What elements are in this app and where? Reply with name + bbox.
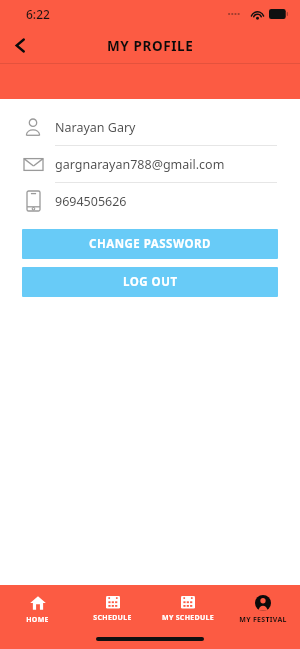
button[interactable]: SCHEDULE	[75, 595, 150, 649]
button[interactable]: gargnarayan788@gmail.com	[0, 146, 300, 183]
button[interactable]: Narayan Gary	[0, 109, 300, 146]
button[interactable]: MY FESTIVAL	[225, 595, 300, 649]
staticText: 9694505626	[55, 193, 127, 210]
staticText: HOME	[26, 615, 49, 625]
button[interactable]: LOG OUT	[22, 267, 278, 297]
staticText: gargnarayan788@gmail.com	[55, 156, 225, 173]
staticText: MY PROFILE	[107, 37, 194, 55]
staticText: MY SCHEDULE	[162, 613, 214, 623]
staticText: MY FESTIVAL	[239, 615, 287, 625]
staticText: 6:22	[26, 6, 50, 22]
staticText: CHANGE PASSWORD	[89, 236, 212, 252]
staticText: SCHEDULE	[93, 613, 132, 623]
button[interactable]: HOME	[0, 595, 75, 649]
staticText: Narayan Gary	[55, 119, 136, 136]
button[interactable]: Back	[0, 28, 40, 63]
button[interactable]: CHANGE PASSWORD	[22, 229, 278, 259]
staticText: LOG OUT	[123, 274, 178, 290]
button[interactable]: 9694505626	[0, 183, 300, 220]
button[interactable]: MY SCHEDULE	[150, 595, 225, 649]
